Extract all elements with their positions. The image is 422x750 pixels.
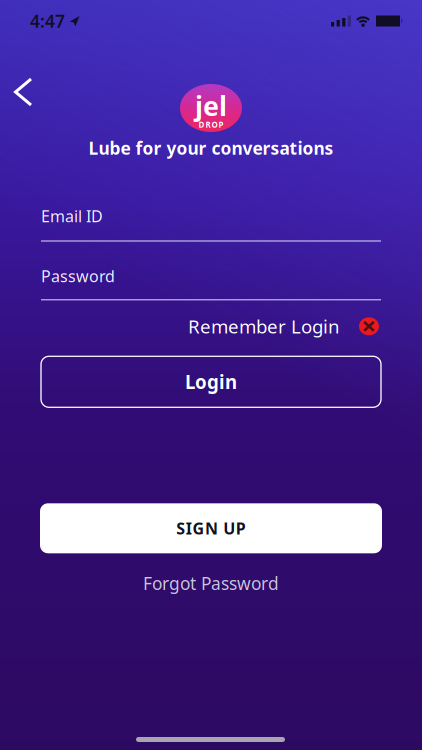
- button[interactable]: Password: [0, 267, 422, 300]
- staticText: Lube for your conversations: [88, 136, 333, 159]
- staticText: Password: [41, 265, 115, 287]
- staticText: DROP: [198, 119, 223, 130]
- button[interactable]: Login: [41, 356, 381, 407]
- staticText: SIGN UP: [176, 518, 246, 539]
- staticText: Login: [185, 369, 237, 394]
- button[interactable]: Back: [6, 70, 40, 114]
- staticText: jel: [195, 88, 227, 123]
- button[interactable]: Email ID: [0, 207, 422, 241]
- button[interactable]: Forgot Password: [143, 573, 279, 593]
- button[interactable]: Remember Login: [0, 316, 422, 336]
- staticText: Forgot Password: [143, 572, 279, 595]
- button[interactable]: SIGN UP: [40, 503, 382, 553]
- staticText: 4:47: [30, 9, 65, 32]
- staticText: Remember Login: [188, 314, 340, 339]
- staticText: Email ID: [41, 205, 103, 227]
